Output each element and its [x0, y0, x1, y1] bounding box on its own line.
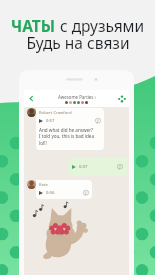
staticText: Kate: [39, 182, 48, 188]
staticText: Awesome Parties ›: [58, 94, 96, 100]
staticText: Robert Crawford: [39, 110, 72, 116]
staticText: с друзьями: [60, 15, 145, 36]
staticText: 0:56: [46, 190, 55, 196]
staticText: 0:57: [46, 118, 55, 124]
button[interactable]: Back: [27, 94, 36, 103]
staticText: Будь на связи: [26, 32, 130, 53]
button[interactable]: Avatar: [27, 108, 36, 117]
staticText: ЧАТЫ: [11, 15, 60, 36]
button[interactable]: Avatar: [27, 180, 36, 189]
staticText: And what did he answer? I told you, this…: [39, 127, 95, 147]
button[interactable]: Group members: [117, 94, 126, 103]
button[interactable]: Robert Crawford: [36, 108, 104, 150]
button[interactable]: 0:37: [68, 158, 127, 176]
button[interactable]: Kate: [36, 180, 92, 199]
staticText: 0:37: [79, 164, 88, 170]
button[interactable]: Back: [24, 90, 129, 107]
